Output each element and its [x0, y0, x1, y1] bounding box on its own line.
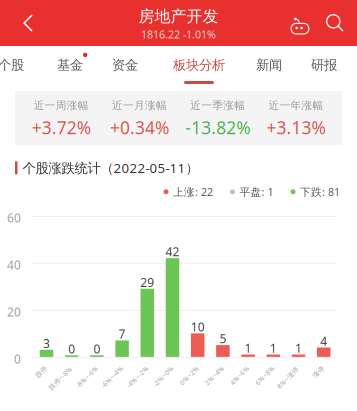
staticText: 0 — [68, 341, 75, 357]
staticText: 8%~涨停 — [274, 373, 302, 382]
staticText: 3 — [43, 335, 50, 351]
staticText: 基金 — [57, 57, 83, 73]
staticText: 60 — [7, 210, 21, 226]
staticText: 个股 — [0, 57, 24, 73]
staticText: 1 — [270, 340, 277, 356]
staticText: 10 — [191, 319, 205, 335]
staticText: 近一月涨幅 — [112, 99, 167, 112]
staticText: 上涨: 22 — [173, 185, 213, 199]
staticText: 4 — [320, 333, 327, 349]
staticText: 房地产开发 — [138, 7, 218, 26]
staticText: 20 — [7, 304, 21, 320]
staticText: 板块分析 — [173, 57, 225, 73]
staticText: 近一年涨幅 — [268, 99, 323, 112]
button[interactable]: Search — [320, 0, 350, 46]
staticText: +3.72% — [32, 116, 91, 139]
staticText: 0 — [14, 351, 21, 367]
staticText: 涨停 — [312, 368, 326, 376]
staticText: +3.13% — [266, 116, 325, 139]
button[interactable]: 个股 — [0, 46, 29, 87]
button[interactable]: 板块分析 — [169, 46, 229, 87]
staticText: +0.34% — [110, 116, 169, 139]
button[interactable]: 新闻 — [251, 46, 287, 87]
staticText: 1 — [295, 340, 302, 356]
staticText: 近一季涨幅 — [190, 99, 245, 112]
staticText: 42 — [165, 244, 179, 260]
staticText: 29 — [140, 274, 154, 290]
staticText: -13.82% — [185, 116, 250, 139]
staticText: 6%~8% — [253, 371, 277, 380]
staticText: 新闻 — [256, 57, 282, 73]
staticText: 7 — [119, 326, 126, 342]
staticText: 1 — [245, 340, 252, 356]
staticText: 下跌: 81 — [300, 185, 340, 199]
staticText: 资金 — [112, 57, 138, 73]
staticText: 平盘: 1 — [239, 185, 273, 199]
staticText: 0 — [93, 341, 100, 357]
staticText: 1816.22 -1.01% — [141, 27, 216, 41]
staticText: -6%~-4% — [98, 372, 126, 381]
staticText: 0%~2% — [177, 371, 201, 380]
button[interactable]: AI assistant — [285, 0, 315, 46]
staticText: 40 — [7, 257, 21, 273]
staticText: -8%~-6% — [73, 372, 101, 381]
staticText: 跌停~-8% — [45, 374, 75, 383]
staticText: -4%~-2% — [123, 372, 151, 381]
button[interactable]: Back — [8, 0, 48, 46]
staticText: -2%~0% — [150, 372, 176, 380]
staticText: 个股涨跌统计（2022-05-11） — [22, 159, 198, 177]
button[interactable]: 基金 — [52, 46, 88, 87]
staticText: 近一周涨幅 — [34, 99, 89, 112]
staticText: 2%~4% — [202, 371, 226, 380]
button[interactable]: 资金 — [107, 46, 143, 87]
staticText: 4%~6% — [228, 371, 252, 380]
staticText: 跌停 — [34, 368, 48, 376]
button[interactable]: 研报 — [306, 46, 342, 87]
staticText: 研报 — [311, 57, 337, 73]
staticText: 5 — [219, 331, 226, 347]
